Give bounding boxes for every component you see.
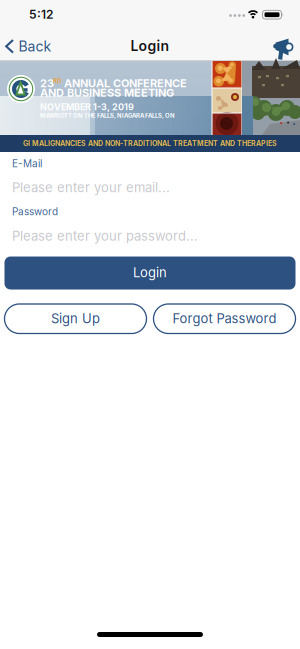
staticText: MARRIOTT ON THE FALLS, NIAGARA FALLS, ON bbox=[40, 112, 175, 119]
staticText: GI MALIGNANCIES AND NON-TRADITIONAL TREA… bbox=[23, 139, 277, 148]
staticText: 23 bbox=[40, 77, 54, 90]
staticText: AND BUSINESS MEETING bbox=[40, 86, 174, 99]
staticText: Login bbox=[130, 38, 169, 54]
staticText: Please enter your password... bbox=[12, 228, 198, 244]
staticText: Back bbox=[18, 38, 51, 54]
staticText: Password bbox=[12, 206, 58, 217]
staticText: E-Mail bbox=[12, 158, 42, 169]
staticText: ANNUAL CONFERENCE bbox=[64, 77, 187, 90]
staticText: Login bbox=[133, 265, 167, 280]
staticText: Forgot Password bbox=[172, 311, 276, 326]
staticText: 5:12 bbox=[29, 7, 53, 22]
staticText: Please enter your email... bbox=[12, 180, 170, 195]
staticText: Sign Up bbox=[51, 311, 100, 326]
staticText: NOVEMBER 1-3, 2019 bbox=[40, 102, 134, 112]
staticText: RD bbox=[53, 77, 61, 84]
